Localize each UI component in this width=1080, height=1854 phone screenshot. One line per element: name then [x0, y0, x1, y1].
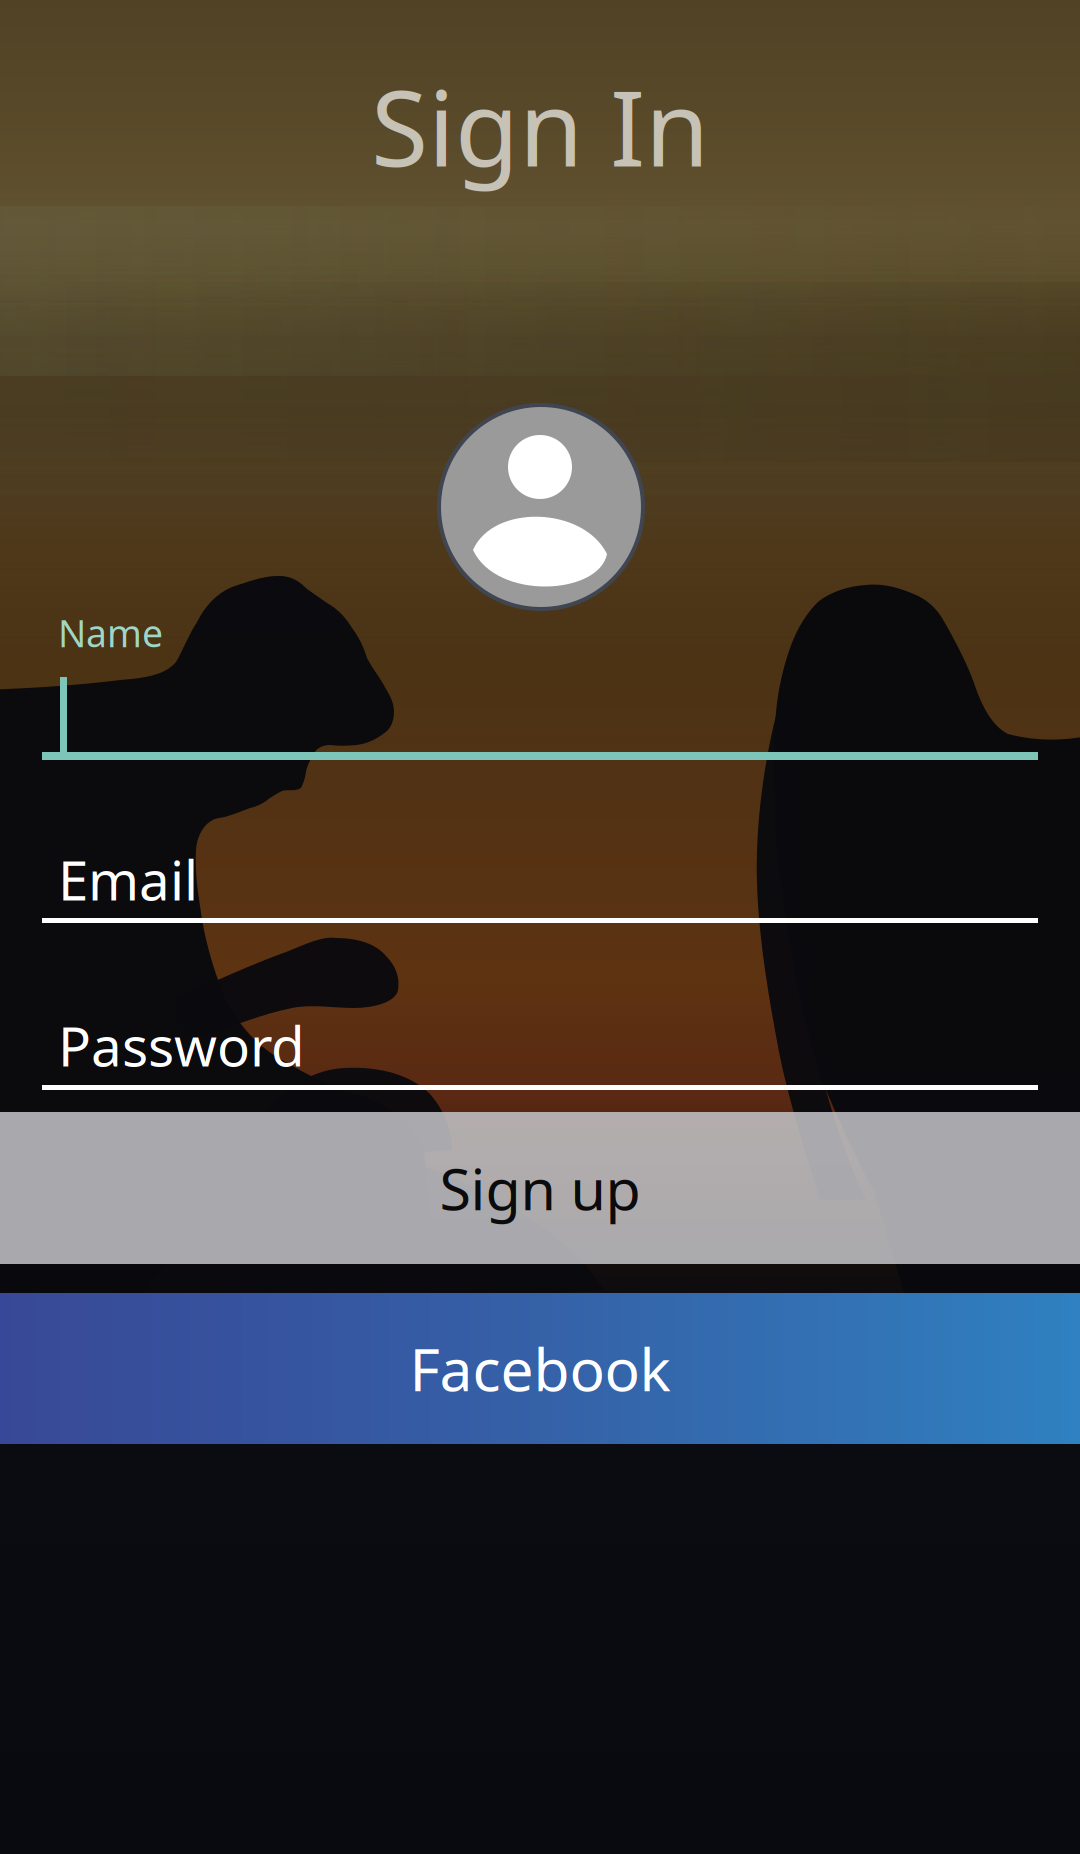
staticText: Sign In: [371, 57, 709, 195]
button[interactable]: Sign up: [0, 1112, 1080, 1264]
staticText: Password: [58, 1009, 305, 1082]
staticText: Sign up: [439, 1150, 640, 1226]
staticText: Email: [58, 843, 198, 916]
staticText: Name: [58, 608, 163, 658]
staticText: Facebook: [409, 1329, 670, 1407]
button[interactable]: Facebook: [0, 1293, 1080, 1444]
